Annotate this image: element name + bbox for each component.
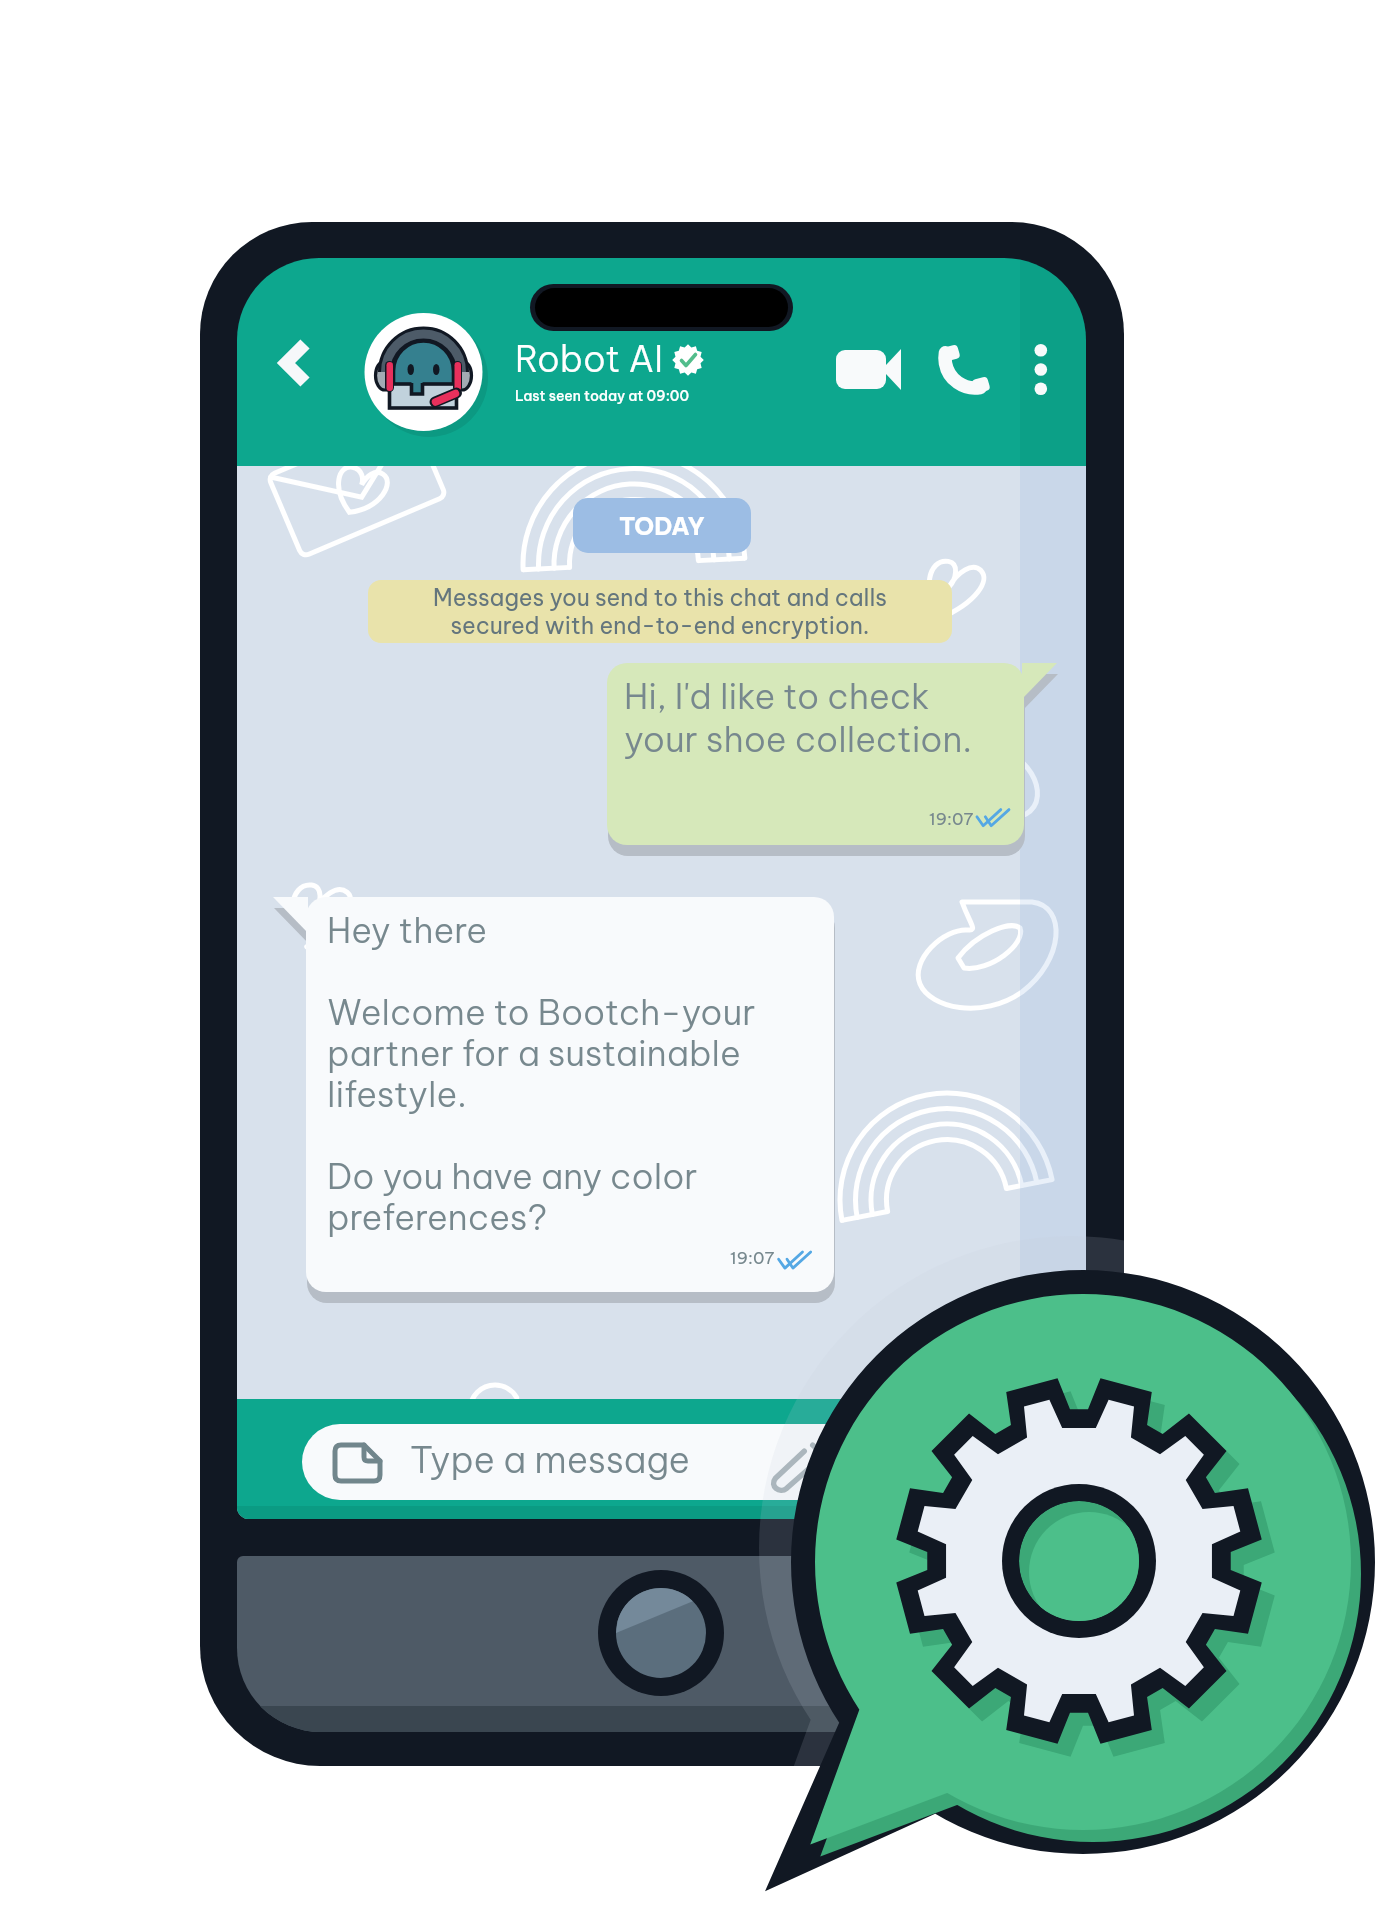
button[interactable]: TODAY [573, 498, 751, 553]
staticText: 19:07 [929, 808, 974, 830]
button[interactable]: Robot AI avatar [361, 310, 485, 434]
button[interactable]: Hey there Welcome to Bootch-your partner… [306, 897, 834, 1292]
button[interactable]: Back [258, 330, 330, 414]
button[interactable]: Robot AI [513, 332, 723, 410]
staticText: Hi, I'd like to check your shoe collecti… [624, 674, 972, 761]
button[interactable]: Hi, I'd like to check your shoe collecti… [607, 663, 1024, 845]
button[interactable]: Voice call [930, 338, 1002, 404]
staticText: Type a message [410, 1437, 690, 1483]
staticText: Hey there Welcome to Bootch-your partner… [327, 908, 756, 1240]
staticText: TODAY [619, 511, 705, 541]
button[interactable]: Type a message [302, 1424, 1024, 1500]
button[interactable]: Video call [824, 338, 914, 404]
staticText: 19:07 [730, 1247, 775, 1269]
staticText: Messages you send to this chat and calls… [433, 583, 887, 640]
button[interactable]: More options [1012, 334, 1070, 408]
button[interactable]: Settings [791, 1270, 1376, 1855]
staticText: Last seen today at 09:00 [515, 387, 690, 405]
staticText: Robot AI [515, 336, 664, 382]
